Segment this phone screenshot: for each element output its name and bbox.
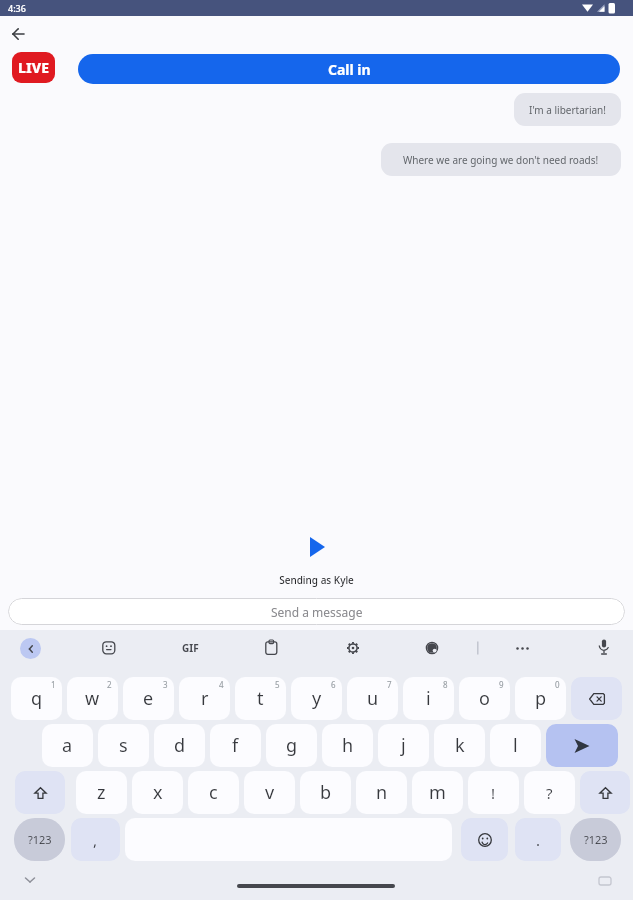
staticText: 1 <box>51 679 56 690</box>
staticText: Call in <box>328 60 371 79</box>
staticText: n <box>376 780 388 805</box>
button[interactable] <box>102 641 116 655</box>
staticText: d <box>174 733 186 758</box>
staticText: ?123 <box>28 832 52 847</box>
staticText: y <box>312 686 322 711</box>
button[interactable]: b <box>300 771 351 814</box>
staticText: j <box>401 733 406 758</box>
button[interactable]: , <box>71 818 120 861</box>
button[interactable]: ?123 <box>14 818 65 861</box>
button[interactable]: LIVE <box>12 52 55 83</box>
staticText: e <box>143 686 154 711</box>
staticText: 8 <box>443 679 448 690</box>
button[interactable]: i <box>403 677 454 720</box>
staticText: l <box>513 733 518 758</box>
button[interactable] <box>546 724 618 767</box>
staticText: x <box>153 780 163 805</box>
staticText: I'm a libertarian! <box>529 103 606 117</box>
staticText: f <box>232 733 239 758</box>
button[interactable]: r <box>179 677 230 720</box>
button[interactable] <box>512 641 533 655</box>
button[interactable] <box>346 641 360 655</box>
button[interactable]: e <box>123 677 174 720</box>
button[interactable]: ?123 <box>570 818 621 861</box>
staticText: 6 <box>331 679 336 690</box>
staticText: ! <box>491 783 496 803</box>
staticText: ? <box>546 783 553 803</box>
staticText: 9 <box>499 679 504 690</box>
staticText: z <box>97 780 106 805</box>
staticText: w <box>85 686 100 711</box>
button[interactable]: a <box>42 724 93 767</box>
button[interactable]: d <box>154 724 205 767</box>
staticText: 2 <box>107 679 112 690</box>
staticText: 7 <box>387 679 392 690</box>
staticText: q <box>31 686 43 711</box>
button[interactable]: q <box>11 677 62 720</box>
button[interactable] <box>571 677 622 720</box>
button[interactable]: ! <box>468 771 519 814</box>
button[interactable]: v <box>244 771 295 814</box>
button[interactable]: o <box>459 677 510 720</box>
staticText: LIVE <box>18 58 49 77</box>
button[interactable]: x <box>132 771 183 814</box>
button[interactable] <box>580 771 630 814</box>
staticText: GIF <box>182 641 199 655</box>
button[interactable] <box>15 771 65 814</box>
button[interactable] <box>598 639 610 656</box>
staticText: i <box>426 686 431 711</box>
button[interactable]: z <box>76 771 127 814</box>
button[interactable]: f <box>210 724 261 767</box>
staticText: a <box>62 733 73 758</box>
staticText: r <box>201 686 209 711</box>
button[interactable] <box>303 533 331 561</box>
staticText: . <box>536 830 541 850</box>
button[interactable]: p <box>515 677 566 720</box>
button[interactable]: h <box>322 724 373 767</box>
button[interactable]: I'm a libertarian! <box>514 93 621 126</box>
button[interactable]: ? <box>524 771 575 814</box>
staticText: c <box>209 780 218 805</box>
staticText: t <box>257 686 264 711</box>
staticText: , <box>93 830 98 850</box>
staticText: Send a message <box>271 604 363 620</box>
staticText: k <box>455 733 465 758</box>
button[interactable]: m <box>412 771 463 814</box>
button[interactable]: w <box>67 677 118 720</box>
staticText: 3 <box>163 679 168 690</box>
button[interactable] <box>8 24 28 44</box>
staticText: o <box>479 686 490 711</box>
staticText: b <box>320 780 332 805</box>
button[interactable] <box>20 638 41 659</box>
staticText: 0 <box>555 679 560 690</box>
button[interactable]: t <box>235 677 286 720</box>
staticText: s <box>119 733 128 758</box>
button[interactable]: g <box>266 724 317 767</box>
button[interactable]: y <box>291 677 342 720</box>
button[interactable]: n <box>356 771 407 814</box>
button[interactable] <box>425 641 439 655</box>
staticText: u <box>367 686 379 711</box>
staticText: Sending as Kyle <box>0 573 633 587</box>
staticText: h <box>342 733 354 758</box>
button[interactable]: . <box>515 818 561 861</box>
button[interactable]: Call in <box>78 54 620 84</box>
button[interactable] <box>461 818 508 861</box>
staticText: m <box>429 780 446 805</box>
staticText: g <box>286 733 298 758</box>
button[interactable] <box>265 640 278 655</box>
button[interactable]: Send a message <box>8 598 625 625</box>
staticText: 4:36 <box>8 2 26 14</box>
button[interactable]: j <box>378 724 429 767</box>
staticText: p <box>535 686 547 711</box>
button[interactable]: u <box>347 677 398 720</box>
staticText: v <box>265 780 275 805</box>
button[interactable]: k <box>434 724 485 767</box>
staticText: 4 <box>219 679 224 690</box>
button[interactable]: Where we are going we don't need roads! <box>381 143 621 176</box>
button[interactable]: c <box>188 771 239 814</box>
button[interactable]: l <box>490 724 541 767</box>
button[interactable]: GIF <box>177 641 203 655</box>
button[interactable]: s <box>98 724 149 767</box>
